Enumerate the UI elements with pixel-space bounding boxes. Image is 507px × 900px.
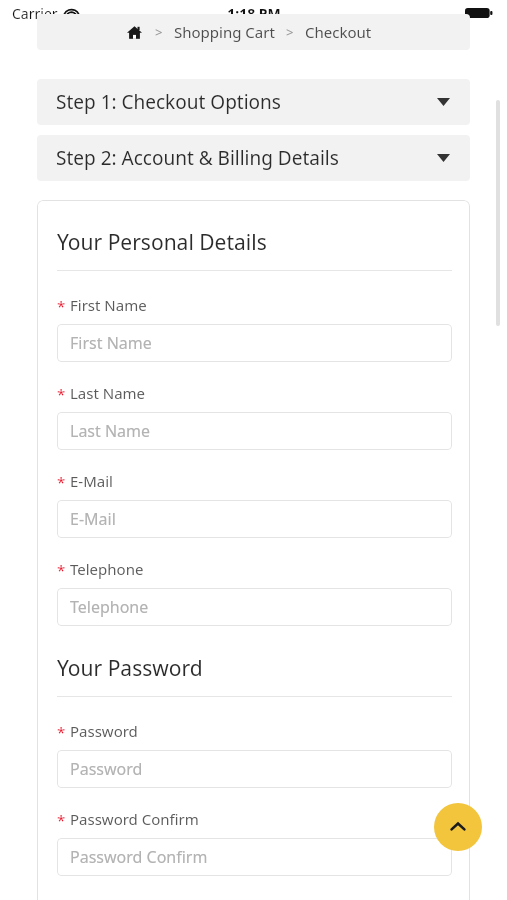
staticText: Telephone (70, 596, 149, 618)
staticText: Password (70, 721, 138, 741)
button[interactable]: Scroll to top (434, 803, 482, 851)
button[interactable]: Home (125, 23, 143, 41)
staticText: Last Name (70, 420, 151, 442)
staticText: 1:18 PM (227, 4, 281, 23)
staticText: Telephone (70, 559, 144, 579)
staticText: Password Confirm (70, 809, 199, 829)
staticText: * (57, 810, 66, 830)
staticText: Carrier (12, 4, 58, 23)
staticText: Password (70, 758, 143, 780)
staticText: * (57, 560, 66, 580)
staticText: * (57, 472, 66, 492)
staticText: Your Password (57, 654, 203, 683)
staticText: Checkout (305, 22, 372, 42)
button[interactable]: Checkout (305, 22, 372, 42)
staticText: > (286, 23, 294, 41)
staticText: Password Confirm (70, 846, 208, 868)
button[interactable]: Step 2: Account & Billing Details (37, 135, 470, 181)
button[interactable]: E-Mail (57, 500, 452, 538)
staticText: First Name (70, 295, 147, 315)
staticText: > (155, 23, 163, 41)
button[interactable]: Password (57, 750, 452, 788)
button[interactable]: Password Confirm (57, 838, 452, 876)
staticText: * (57, 296, 66, 316)
button[interactable]: Shopping Cart (174, 22, 275, 42)
staticText: Step 2: Account & Billing Details (56, 145, 339, 171)
staticText: First Name (70, 332, 152, 354)
staticText: Your Personal Details (57, 228, 267, 257)
staticText: Last Name (70, 383, 146, 403)
staticText: * (57, 722, 66, 742)
staticText: * (57, 384, 66, 404)
button[interactable]: Step 1: Checkout Options (37, 79, 470, 125)
staticText: Shopping Cart (174, 22, 275, 42)
button[interactable]: Telephone (57, 588, 452, 626)
staticText: E-Mail (70, 508, 116, 530)
button[interactable]: First Name (57, 324, 452, 362)
staticText: Step 1: Checkout Options (56, 89, 281, 115)
staticText: E-Mail (70, 471, 113, 491)
button[interactable]: Last Name (57, 412, 452, 450)
